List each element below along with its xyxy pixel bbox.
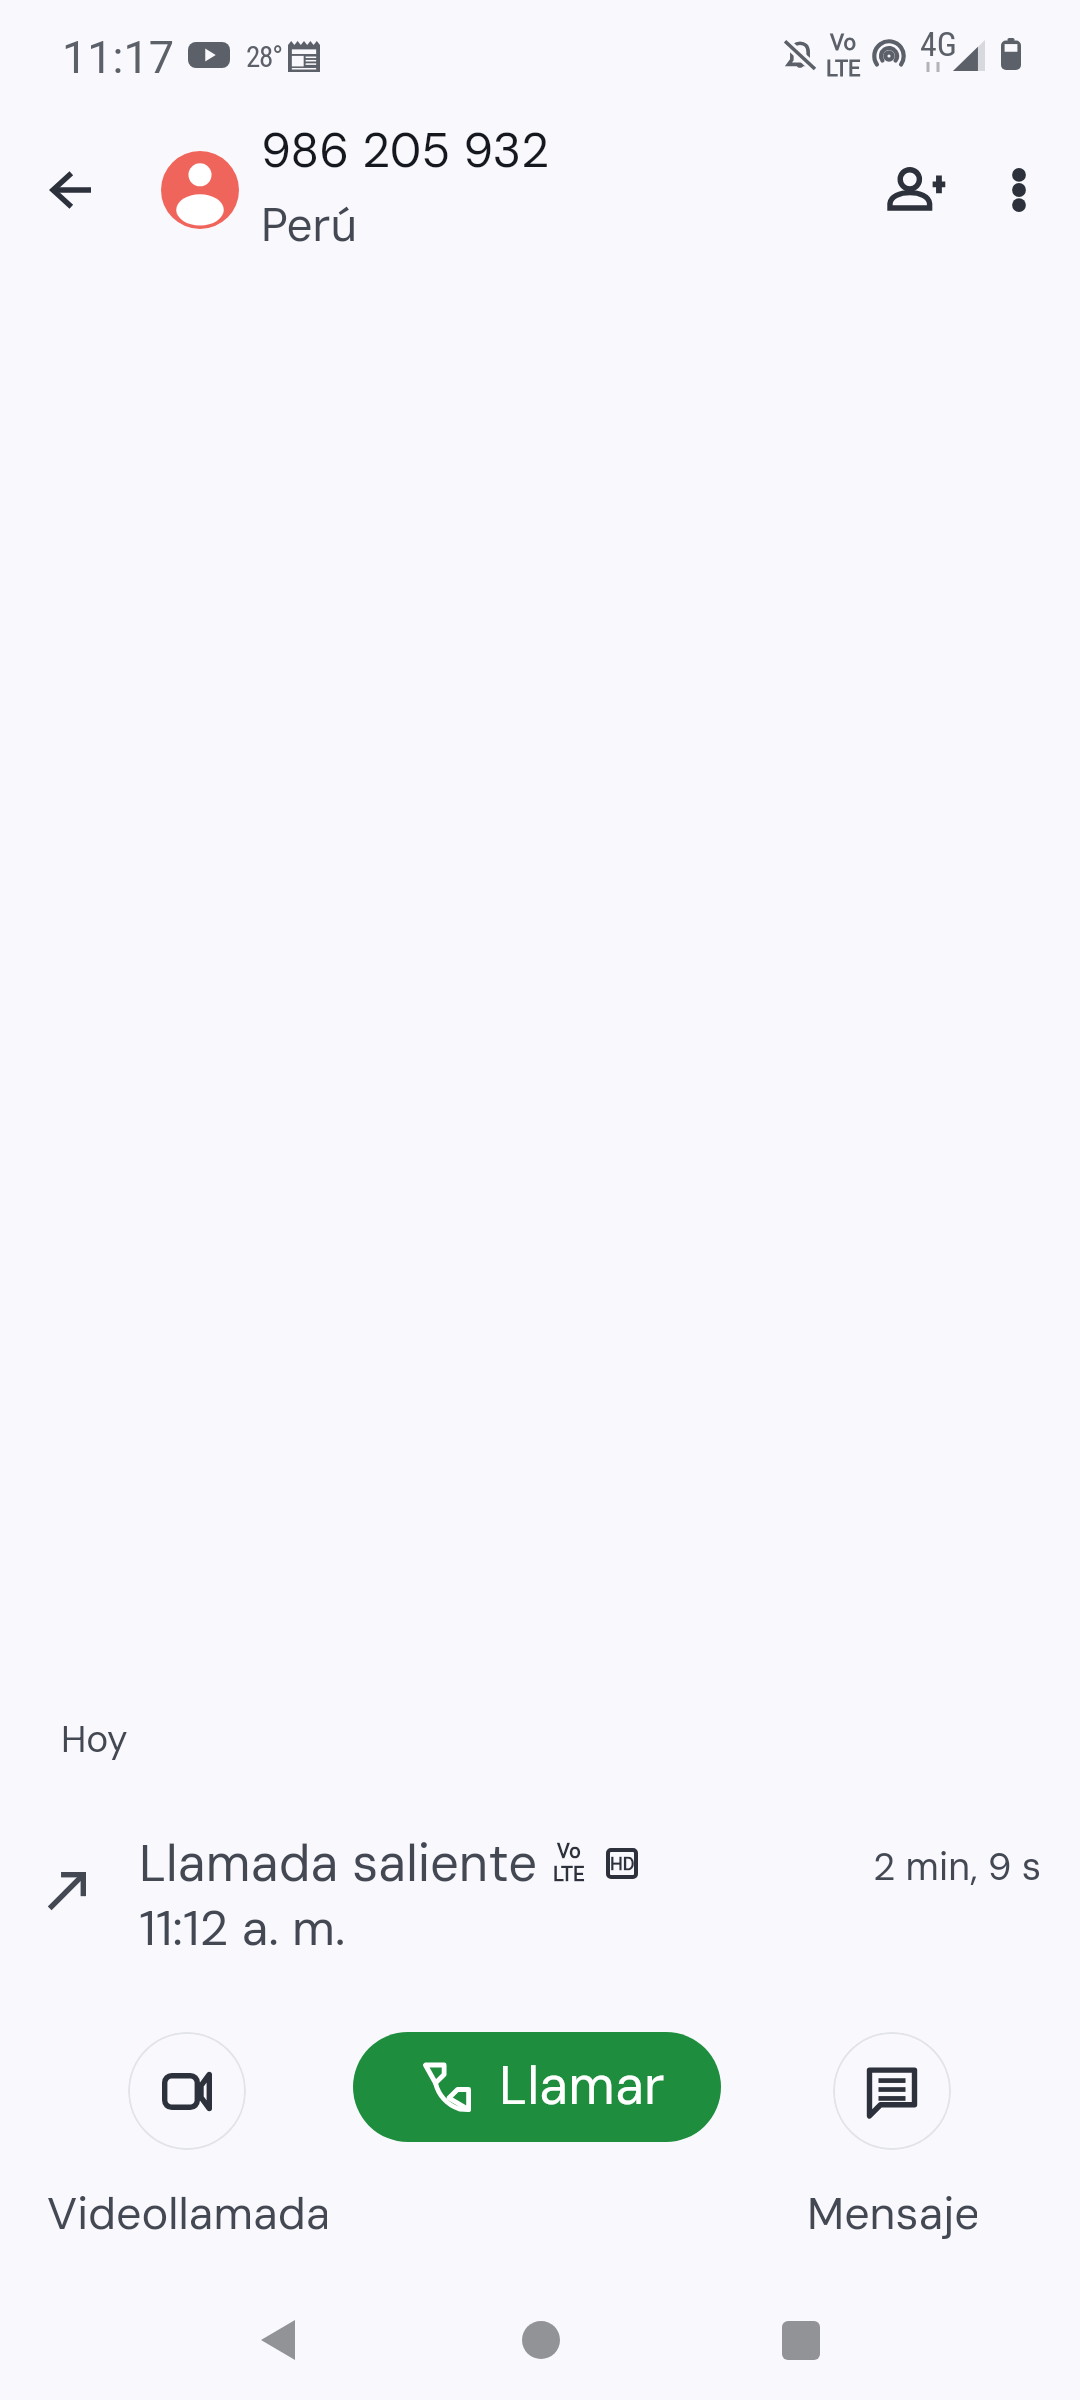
button[interactable]: Llamada saliente xyxy=(0,1830,1080,1960)
staticText: 11:12 a. m. xyxy=(139,1896,346,1960)
button[interactable]: Add contact xyxy=(861,133,973,245)
button[interactable]: Mensaje xyxy=(807,2032,977,2243)
button[interactable]: Llamar xyxy=(353,2032,721,2142)
button[interactable]: More options xyxy=(963,134,1075,246)
staticText: Hoy xyxy=(61,1715,128,1763)
staticText: Vo xyxy=(830,30,857,56)
staticText: Videollamada xyxy=(47,2184,327,2243)
staticText: LTE xyxy=(553,1862,585,1885)
staticText: Mensaje xyxy=(807,2184,977,2243)
button[interactable]: Videollamada xyxy=(47,2032,327,2243)
button[interactable]: Back xyxy=(198,2280,358,2400)
staticText: LTE xyxy=(826,56,861,82)
button[interactable]: Recent apps xyxy=(721,2280,881,2400)
button[interactable]: Back xyxy=(14,134,126,246)
staticText: Vo xyxy=(557,1839,581,1862)
staticText: Llamar xyxy=(499,2051,665,2120)
staticText: 2 min, 9 s xyxy=(873,1842,1041,1891)
staticText: 986 205 932 xyxy=(261,119,550,181)
staticText: HD xyxy=(610,1853,635,1874)
staticText: Llamada saliente xyxy=(139,1830,538,1896)
staticText: 11:17 xyxy=(62,31,175,84)
staticText: 28° xyxy=(246,40,282,74)
staticText: 4G xyxy=(920,24,957,64)
button[interactable]: Home xyxy=(461,2280,621,2400)
staticText: Perú xyxy=(261,195,358,255)
